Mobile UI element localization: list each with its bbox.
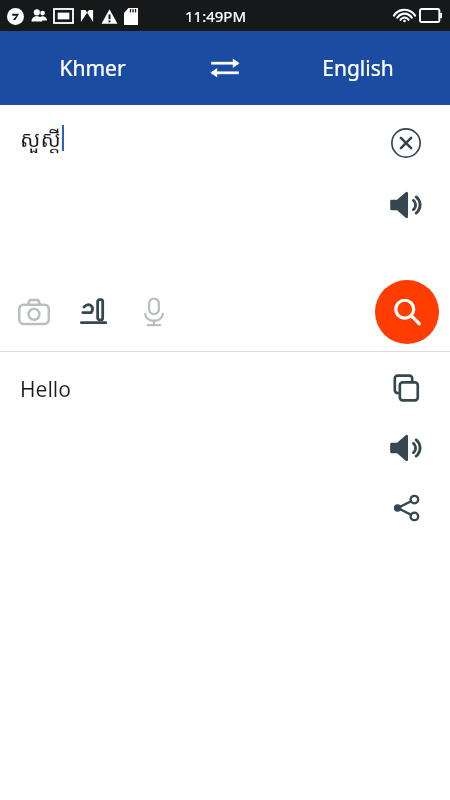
button[interactable]: English: [265, 31, 450, 105]
button[interactable]: Copy translation: [378, 360, 434, 416]
button[interactable]: Translate: [375, 280, 439, 344]
button[interactable]: Camera input: [6, 284, 62, 340]
button[interactable]: Handwriting input: [66, 284, 122, 340]
button[interactable]: Voice input: [126, 284, 182, 340]
button[interactable]: Share translation: [378, 480, 434, 536]
staticText: Hello: [20, 375, 71, 404]
button[interactable]: Swap languages: [185, 31, 265, 105]
button[interactable]: Khmer: [0, 31, 185, 105]
staticText: សួស្តី: [20, 123, 61, 153]
staticText: Khmer: [59, 54, 126, 83]
button[interactable]: Listen to source text: [378, 177, 434, 233]
staticText: 11:49PM: [185, 6, 247, 26]
staticText: English: [322, 54, 394, 83]
button[interactable]: Listen to translation: [378, 420, 434, 476]
button[interactable]: Clear text: [378, 115, 434, 171]
